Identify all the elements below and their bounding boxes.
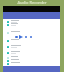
button[interactable] bbox=[3, 56, 60, 59]
button[interactable] bbox=[3, 39, 60, 42]
staticText: Audio Recorder bbox=[17, 0, 47, 5]
button[interactable] bbox=[3, 20, 60, 23]
button[interactable] bbox=[3, 31, 60, 34]
button[interactable] bbox=[3, 23, 60, 26]
button[interactable] bbox=[3, 51, 60, 54]
button[interactable] bbox=[3, 59, 60, 62]
button[interactable] bbox=[3, 45, 60, 48]
button[interactable] bbox=[3, 62, 60, 65]
